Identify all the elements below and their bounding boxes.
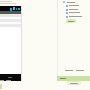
button[interactable] — [66, 19, 76, 23]
button[interactable] — [66, 4, 86, 7]
button[interactable] — [66, 11, 86, 14]
button[interactable] — [66, 8, 86, 11]
button[interactable] — [67, 81, 81, 85]
button[interactable] — [66, 15, 86, 18]
